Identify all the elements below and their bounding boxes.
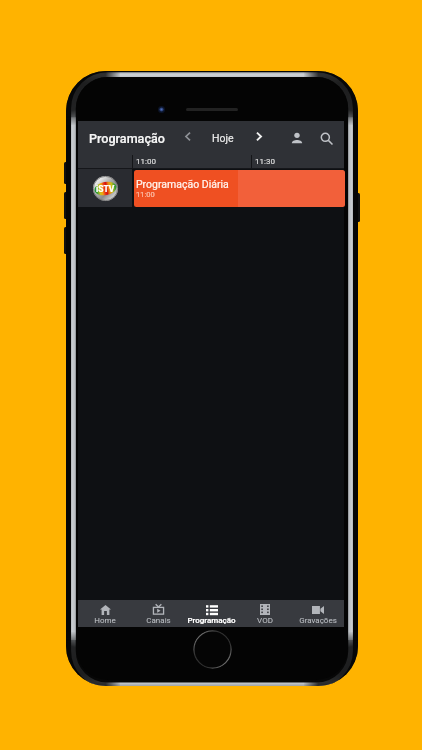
staticText: VOD bbox=[257, 616, 273, 625]
button[interactable]: Hoje bbox=[207, 126, 239, 150]
staticText: Programação bbox=[89, 131, 165, 146]
button[interactable]: Search bbox=[314, 126, 338, 150]
staticText: 11:00 bbox=[136, 190, 155, 199]
staticText: 11:30 bbox=[255, 157, 275, 166]
button[interactable]: Programação Diária bbox=[134, 170, 345, 207]
staticText: iSTV bbox=[96, 184, 115, 194]
button[interactable]: Next day bbox=[248, 126, 268, 146]
staticText: Home bbox=[94, 616, 116, 625]
button[interactable]: Programação bbox=[185, 600, 238, 627]
button[interactable]: VOD bbox=[238, 600, 291, 627]
staticText: Gravações bbox=[299, 616, 337, 625]
button[interactable]: Previous day bbox=[178, 126, 198, 146]
button[interactable]: Gravações bbox=[291, 600, 344, 627]
staticText: Canais bbox=[146, 616, 171, 625]
staticText: Hoje bbox=[212, 132, 234, 144]
staticText: Programação Diária bbox=[136, 178, 229, 190]
button[interactable]: Canais bbox=[132, 600, 185, 627]
button[interactable]: Home bbox=[78, 600, 132, 627]
staticText: Programação bbox=[187, 616, 236, 625]
button[interactable]: Account bbox=[285, 126, 309, 150]
staticText: 11:00 bbox=[136, 157, 156, 166]
